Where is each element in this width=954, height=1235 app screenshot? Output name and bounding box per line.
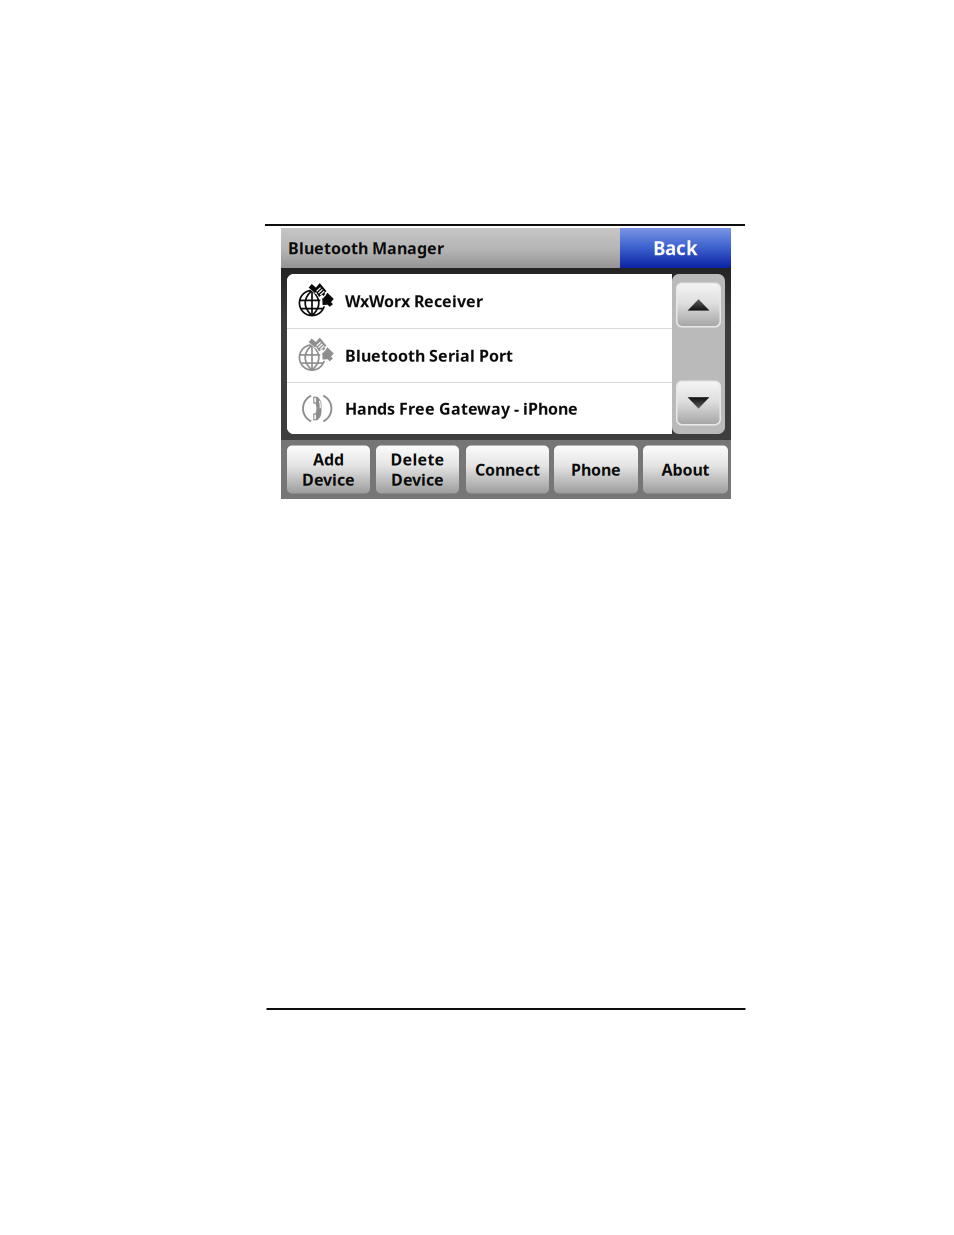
staticText: Device xyxy=(302,469,355,490)
staticText: Connect xyxy=(475,459,540,480)
button[interactable]: Hands Free Gateway - iPhone xyxy=(287,383,672,434)
staticText: WxWorx Receiver xyxy=(345,290,483,312)
staticText: Delete xyxy=(390,449,444,470)
staticText: Back xyxy=(653,236,698,260)
staticText: Bluetooth Manager xyxy=(288,237,444,259)
button[interactable]: Back xyxy=(620,228,731,268)
button[interactable]: Bluetooth Serial Port xyxy=(287,329,672,382)
button[interactable]: Scroll up xyxy=(672,279,725,331)
button[interactable]: Scroll down xyxy=(672,377,725,429)
button[interactable]: Add xyxy=(287,445,370,493)
staticText: About xyxy=(661,459,709,480)
staticText: Bluetooth Serial Port xyxy=(345,345,513,366)
staticText: Hands Free Gateway - iPhone xyxy=(345,398,578,419)
staticText: Add xyxy=(313,449,344,470)
button[interactable]: Delete xyxy=(376,445,459,493)
button[interactable]: About xyxy=(643,445,728,493)
staticText: Phone xyxy=(571,459,621,480)
staticText: Device xyxy=(391,469,444,490)
button[interactable]: Phone xyxy=(554,445,638,493)
button[interactable]: WxWorx Receiver xyxy=(287,274,672,328)
button[interactable]: Connect xyxy=(466,445,549,493)
